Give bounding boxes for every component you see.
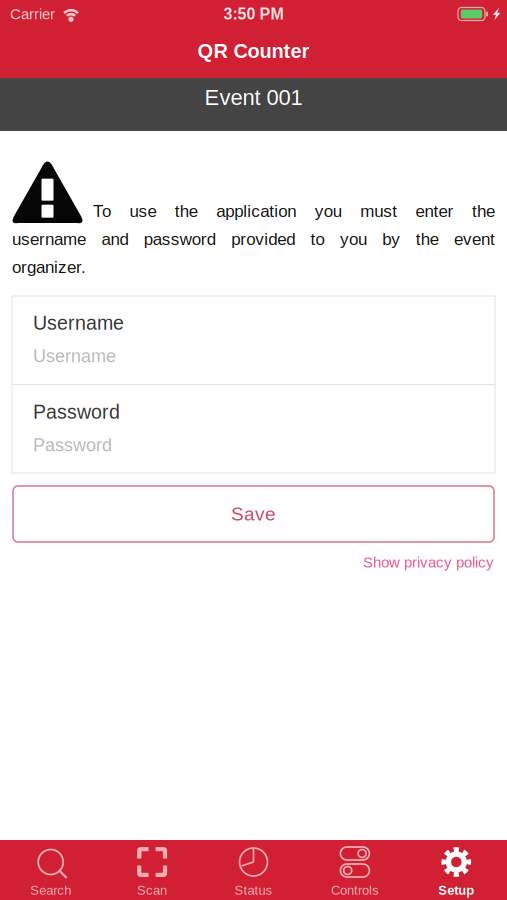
button[interactable]: Search (0, 840, 101, 900)
staticText: the (472, 201, 495, 220)
staticText: you (340, 229, 367, 248)
staticText: must (360, 201, 397, 220)
staticText: Carrier (10, 6, 55, 22)
staticText: Password (33, 435, 112, 455)
staticText: Password (33, 401, 120, 423)
staticText: organizer. (12, 257, 86, 276)
staticText: enter (416, 201, 454, 220)
staticText: the (416, 229, 439, 248)
staticText: use (129, 201, 156, 220)
staticText: password (144, 229, 216, 248)
staticText: Search (30, 883, 71, 897)
button[interactable]: Controls (304, 840, 406, 900)
staticText: event (454, 229, 495, 248)
button[interactable]: Scan (101, 840, 203, 900)
staticText: Username (33, 346, 116, 366)
staticText: and (101, 229, 128, 248)
button[interactable]: Show privacy policy (363, 554, 494, 571)
staticText: application (216, 201, 296, 220)
staticText: Event 001 (204, 85, 302, 110)
staticText: Controls (331, 883, 379, 897)
staticText: QR Counter (197, 40, 309, 62)
staticText: 3:50 PM (223, 5, 283, 23)
staticText: the (175, 201, 198, 220)
staticText: provided (231, 229, 295, 248)
staticText: Username (33, 312, 124, 334)
button[interactable]: Setup (406, 840, 507, 900)
staticText: Setup (438, 883, 474, 897)
staticText: username (12, 229, 86, 248)
button[interactable]: Status (203, 840, 304, 900)
staticText: you (315, 201, 342, 220)
staticText: To (93, 201, 111, 220)
staticText: Status (234, 883, 272, 897)
staticText: Save (231, 503, 276, 525)
staticText: by (382, 229, 400, 248)
button[interactable]: Save (0, 486, 507, 542)
staticText: to (310, 229, 324, 248)
staticText: Show privacy policy (363, 554, 494, 571)
staticText: Scan (137, 883, 167, 897)
